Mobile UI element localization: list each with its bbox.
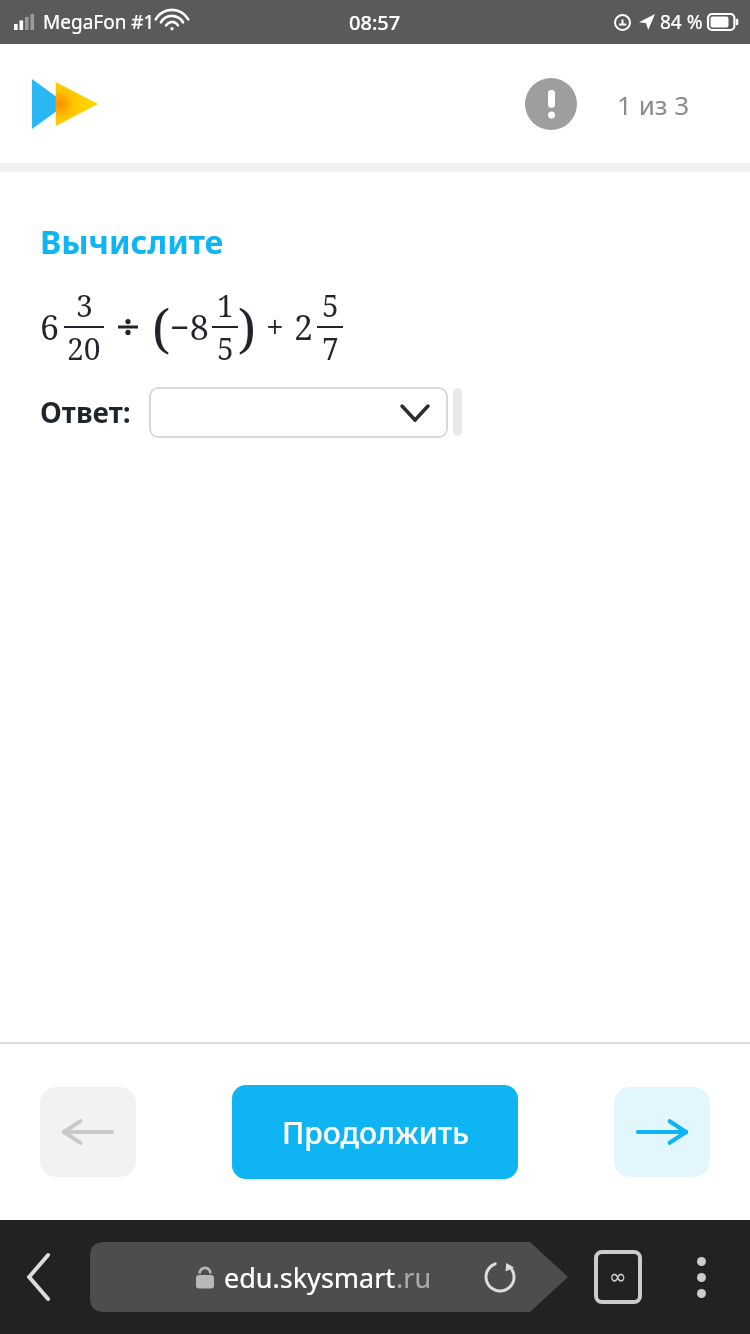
staticText: .ru (396, 1259, 432, 1296)
staticText: 1 (217, 285, 234, 326)
button[interactable]: Back (26, 1255, 52, 1299)
button[interactable]: Answer dropdown (149, 387, 448, 438)
staticText: Ответ: (40, 393, 131, 431)
staticText: 6 (40, 304, 60, 350)
staticText: 84 % (660, 9, 703, 35)
staticText: 7 (322, 328, 339, 369)
staticText: 3 (76, 285, 93, 326)
button[interactable]: More options (689, 1249, 714, 1306)
button[interactable]: Tabs (594, 1250, 642, 1304)
staticText: 1 из 3 (617, 87, 690, 122)
button[interactable]: Info (525, 78, 577, 130)
button[interactable]: Previous (40, 1087, 136, 1177)
staticText: ∞ (609, 1265, 627, 1289)
staticText: −8 (170, 304, 209, 350)
staticText: 2 (294, 304, 314, 350)
button[interactable]: edu.skysmart (90, 1242, 568, 1312)
staticText: Продолжить (282, 1112, 469, 1153)
staticText: edu.skysmart (224, 1259, 396, 1296)
staticText: MegaFon #1 (43, 9, 155, 35)
staticText: Вычислите (40, 220, 224, 264)
staticText: 5 (217, 328, 234, 369)
staticText: ( (152, 292, 170, 363)
button[interactable]: Skysmart logo (32, 79, 98, 129)
button[interactable]: Продолжить (232, 1085, 518, 1179)
staticText: + (266, 305, 284, 349)
staticText: 08:57 (349, 9, 401, 36)
button[interactable]: Next (614, 1087, 710, 1177)
staticText: 20 (67, 328, 101, 369)
staticText: 5 (322, 285, 339, 326)
staticText: ) (238, 292, 256, 363)
other: Reload (486, 1263, 514, 1291)
